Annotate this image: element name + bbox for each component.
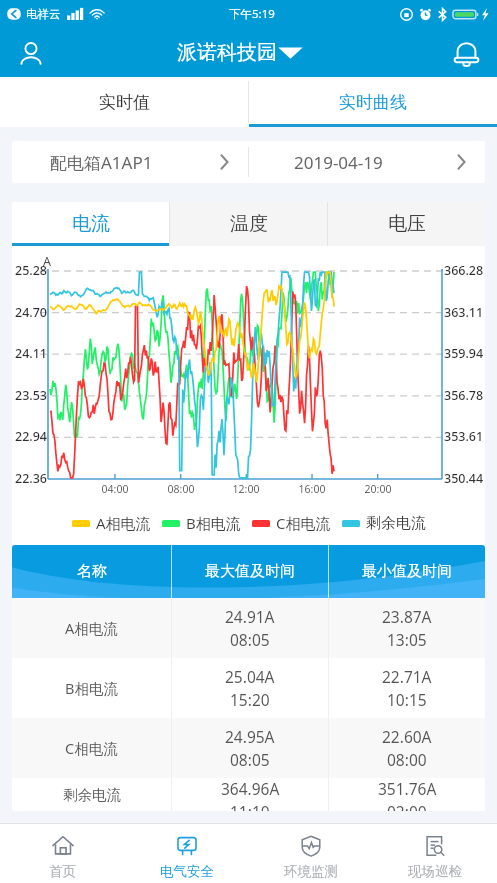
- staticText: 首页: [49, 863, 76, 880]
- staticText: 22.60A: [382, 726, 432, 747]
- staticText: 22.36: [12, 470, 47, 487]
- staticText: 23.53: [12, 387, 47, 404]
- button[interactable]: C相电流: [12, 718, 485, 778]
- staticText: 名称: [77, 562, 107, 581]
- staticText: 电压: [388, 212, 426, 236]
- staticText: 24.95A: [225, 726, 275, 747]
- staticText: 电气安全: [160, 863, 214, 880]
- staticText: 350.44: [444, 470, 484, 487]
- staticText: 364.96A: [221, 778, 280, 799]
- staticText: 实时曲线: [339, 92, 407, 113]
- staticText: 12:00: [223, 482, 269, 496]
- staticText: 25.04A: [225, 666, 275, 687]
- staticText: A相电流: [96, 513, 151, 533]
- staticText: 2019-04-19: [294, 151, 383, 174]
- staticText: 最大值及时间: [205, 562, 295, 581]
- staticText: 11:10: [230, 801, 270, 811]
- staticText: 24.11: [12, 345, 47, 362]
- button[interactable]: 配电箱A1AP1: [12, 141, 248, 183]
- staticText: 351.76A: [378, 778, 437, 799]
- button[interactable]: 温度: [170, 202, 327, 246]
- button[interactable]: A相电流: [12, 598, 485, 658]
- staticText: 04:00: [92, 482, 138, 496]
- staticText: 366.28: [444, 262, 484, 279]
- staticText: 电流: [72, 212, 110, 236]
- staticText: 02:00: [387, 801, 427, 811]
- staticText: 20:00: [355, 482, 401, 496]
- staticText: A相电流: [65, 618, 118, 638]
- staticText: 现场巡检: [408, 863, 462, 880]
- staticText: 剩余电流: [366, 514, 426, 533]
- staticText: 电祥云: [26, 7, 61, 21]
- button[interactable]: 派诺科技园: [177, 40, 304, 65]
- button[interactable]: 首页: [0, 824, 125, 883]
- staticText: 温度: [230, 212, 268, 236]
- staticText: 23.87A: [382, 606, 432, 627]
- button[interactable]: B相电流: [12, 658, 485, 718]
- button[interactable]: 现场巡检: [373, 824, 497, 883]
- staticText: 25.28: [12, 262, 47, 279]
- staticText: 16:00: [289, 482, 335, 496]
- staticText: 10:15: [387, 689, 427, 710]
- staticText: B相电流: [186, 513, 241, 533]
- staticText: 08:05: [230, 749, 270, 770]
- staticText: 下午5:19: [229, 6, 275, 22]
- staticText: 359.94: [444, 345, 484, 362]
- staticText: 最小值及时间: [362, 562, 452, 581]
- button[interactable]: 电压: [328, 202, 485, 246]
- staticText: 08:00: [158, 482, 204, 496]
- button[interactable]: Account: [14, 36, 48, 70]
- staticText: 13:05: [387, 629, 427, 650]
- button[interactable]: Notifications: [449, 36, 483, 70]
- button[interactable]: 剩余电流: [12, 778, 485, 811]
- staticText: 配电箱A1AP1: [50, 151, 153, 174]
- staticText: B相电流: [65, 678, 118, 698]
- staticText: 08:00: [387, 749, 427, 770]
- staticText: 22.71A: [382, 666, 432, 687]
- staticText: 22.94: [12, 428, 47, 445]
- button[interactable]: 2019-04-19: [249, 141, 485, 183]
- staticText: 派诺科技园: [177, 40, 277, 65]
- button[interactable]: 电气安全: [125, 824, 249, 883]
- button[interactable]: 电流: [12, 202, 169, 246]
- staticText: 24.91A: [225, 606, 275, 627]
- button[interactable]: 环境监测: [249, 824, 373, 883]
- staticText: 15:20: [230, 689, 270, 710]
- staticText: 363.11: [444, 304, 484, 321]
- staticText: 08:05: [230, 629, 270, 650]
- button[interactable]: 实时曲线: [249, 77, 497, 127]
- button[interactable]: 实时值: [0, 77, 248, 127]
- staticText: A: [43, 253, 51, 270]
- staticText: C相电流: [276, 513, 331, 533]
- staticText: 剩余电流: [63, 786, 121, 804]
- staticText: 环境监测: [284, 863, 338, 880]
- staticText: 实时值: [99, 92, 150, 113]
- staticText: C相电流: [65, 738, 118, 758]
- staticText: 353.61: [444, 428, 484, 445]
- staticText: 24.70: [12, 304, 47, 321]
- staticText: 356.78: [444, 387, 484, 404]
